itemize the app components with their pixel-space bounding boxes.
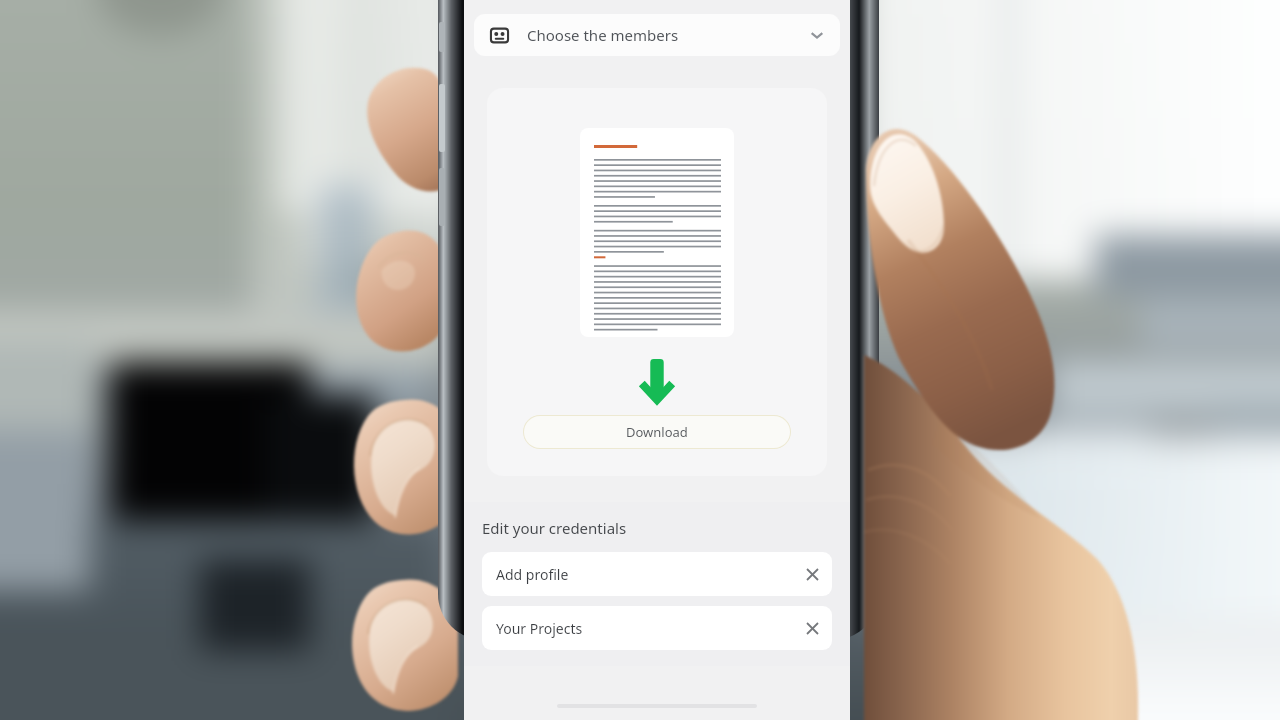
staticText: Your Projects <box>496 619 583 638</box>
button[interactable]: Choose the members <box>474 14 840 56</box>
button[interactable]: Add profile <box>482 552 832 596</box>
other: Remove <box>807 569 818 580</box>
staticText: Add profile <box>496 565 569 584</box>
staticText: Download <box>626 423 688 441</box>
other: Expand <box>810 28 824 42</box>
button[interactable]: Download <box>524 416 790 448</box>
other: Remove <box>807 623 818 634</box>
staticText: Choose the members <box>527 25 679 45</box>
staticText: Edit your credentials <box>482 518 627 538</box>
other: Download <box>641 359 673 403</box>
button[interactable]: Your Projects <box>482 606 832 650</box>
